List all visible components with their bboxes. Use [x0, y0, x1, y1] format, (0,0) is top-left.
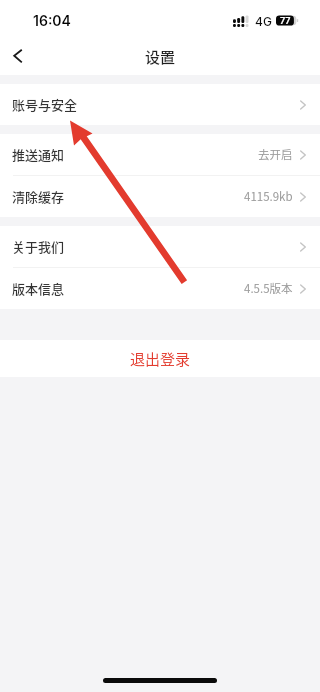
button[interactable]: 版本信息	[0, 268, 320, 309]
staticText: 16:04	[33, 12, 71, 29]
staticText: 推送通知	[12, 145, 65, 164]
staticText: 退出登录	[130, 348, 191, 370]
staticText: 77	[280, 15, 291, 26]
staticText: 4115.9kb	[244, 188, 293, 205]
button[interactable]: Back	[0, 39, 36, 75]
button[interactable]: 退出登录	[0, 340, 320, 377]
button[interactable]: 账号与安全	[0, 84, 320, 125]
staticText: 设置	[145, 46, 176, 68]
button[interactable]: 推送通知	[0, 134, 320, 175]
staticText: 关于我们	[12, 237, 65, 256]
staticText: 版本信息	[12, 279, 65, 298]
staticText: 清除缓存	[12, 187, 65, 206]
button[interactable]: 关于我们	[0, 226, 320, 267]
staticText: 4G	[255, 14, 272, 29]
staticText: 去开启	[258, 146, 293, 163]
staticText: 账号与安全	[12, 95, 78, 114]
staticText: 4.5.5版本	[244, 280, 293, 297]
button[interactable]: 清除缓存	[0, 176, 320, 217]
